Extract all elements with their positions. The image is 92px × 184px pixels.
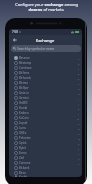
staticText: Bybit — [19, 146, 26, 150]
button[interactable]: Search by symbol or name — [11, 45, 81, 52]
staticText: dozens of markets — [28, 7, 64, 12]
staticText: Configure your exchange among — [15, 2, 78, 7]
staticText: L — [78, 112, 80, 115]
staticText: D — [78, 72, 80, 75]
staticText: Bitbank — [19, 166, 30, 170]
staticText: A — [78, 57, 80, 60]
staticText: P — [78, 132, 80, 135]
staticText: OKEx — [19, 131, 27, 135]
staticText: Q — [78, 137, 80, 140]
staticText: T — [78, 152, 80, 155]
staticText: Coinone — [19, 161, 31, 165]
button[interactable]: OKEx — [9, 130, 82, 135]
button[interactable]: Gemini — [9, 95, 82, 100]
button[interactable]: Upbit — [9, 140, 82, 145]
button[interactable]: Bybit — [9, 145, 82, 150]
staticText: Huobi — [19, 106, 28, 110]
staticText: Zaif — [19, 156, 25, 160]
staticText: R — [78, 142, 80, 145]
staticText: C — [78, 67, 80, 70]
staticText: Kraken — [19, 111, 29, 115]
staticText: U — [78, 157, 80, 160]
staticText: HitBTC — [19, 101, 29, 105]
button[interactable]: Poloniex — [9, 135, 82, 140]
staticText: I — [78, 97, 79, 100]
button[interactable]: Coinbase — [9, 65, 82, 70]
button[interactable]: Korbit — [9, 175, 82, 177]
staticText: Upbit — [19, 141, 27, 145]
button[interactable]: KuCoin — [9, 115, 82, 120]
staticText: Bitflyer — [19, 86, 29, 90]
button[interactable]: Liquid — [9, 120, 82, 125]
staticText: Bitfinex — [19, 71, 30, 75]
staticText: Bithumb — [19, 76, 31, 80]
button[interactable]: Binance — [9, 55, 82, 60]
staticText: B — [78, 62, 80, 65]
staticText: S — [78, 147, 80, 150]
button[interactable]: Huobi — [9, 105, 82, 110]
staticText: Poloniex — [19, 136, 31, 140]
button[interactable]: Bithumb — [9, 75, 82, 80]
staticText: Liquid — [19, 121, 28, 125]
button[interactable]: Exmo — [9, 150, 82, 155]
staticText: Coinbase — [19, 66, 32, 70]
button[interactable]: HitBTC — [9, 100, 82, 105]
staticText: H — [78, 92, 80, 95]
staticText: Luno — [19, 126, 26, 130]
staticText: Bitso — [19, 171, 26, 175]
button[interactable]: Bitstamp — [9, 60, 82, 65]
staticText: M — [77, 117, 80, 120]
button[interactable]: Bitso — [9, 170, 82, 175]
staticText: V — [78, 162, 80, 165]
button[interactable]: Back — [9, 35, 20, 45]
staticText: K — [78, 107, 80, 110]
staticText: 7:58 — [12, 30, 18, 34]
staticText: F — [78, 82, 80, 85]
staticText: Exchange — [36, 38, 55, 43]
button[interactable]: Bittrex — [9, 80, 82, 85]
button[interactable]: Kraken — [9, 110, 82, 115]
button[interactable]: Coinone — [9, 160, 82, 165]
staticText: G — [78, 87, 80, 90]
staticText: Bitstamp — [19, 61, 32, 65]
staticText: E — [78, 77, 80, 80]
staticText: Search by symbol or name — [17, 47, 55, 51]
button[interactable]: Gate.io — [9, 90, 82, 95]
button[interactable]: Bitfinex — [9, 70, 82, 75]
staticText: Korbit — [19, 175, 28, 177]
staticText: Exmo — [19, 151, 27, 155]
button[interactable]: Bitbank — [9, 165, 82, 170]
staticText: N — [78, 122, 80, 125]
staticText: Gemini — [19, 96, 29, 100]
button[interactable]: Luno — [9, 125, 82, 130]
staticText: KuCoin — [19, 116, 29, 120]
staticText: J — [78, 102, 79, 105]
staticText: Gate.io — [19, 91, 29, 95]
staticText: Bittrex — [19, 81, 28, 85]
button[interactable]: Bitflyer — [9, 85, 82, 90]
staticText: Binance — [19, 56, 30, 60]
staticText: O — [78, 127, 80, 130]
button[interactable]: Zaif — [9, 155, 82, 160]
